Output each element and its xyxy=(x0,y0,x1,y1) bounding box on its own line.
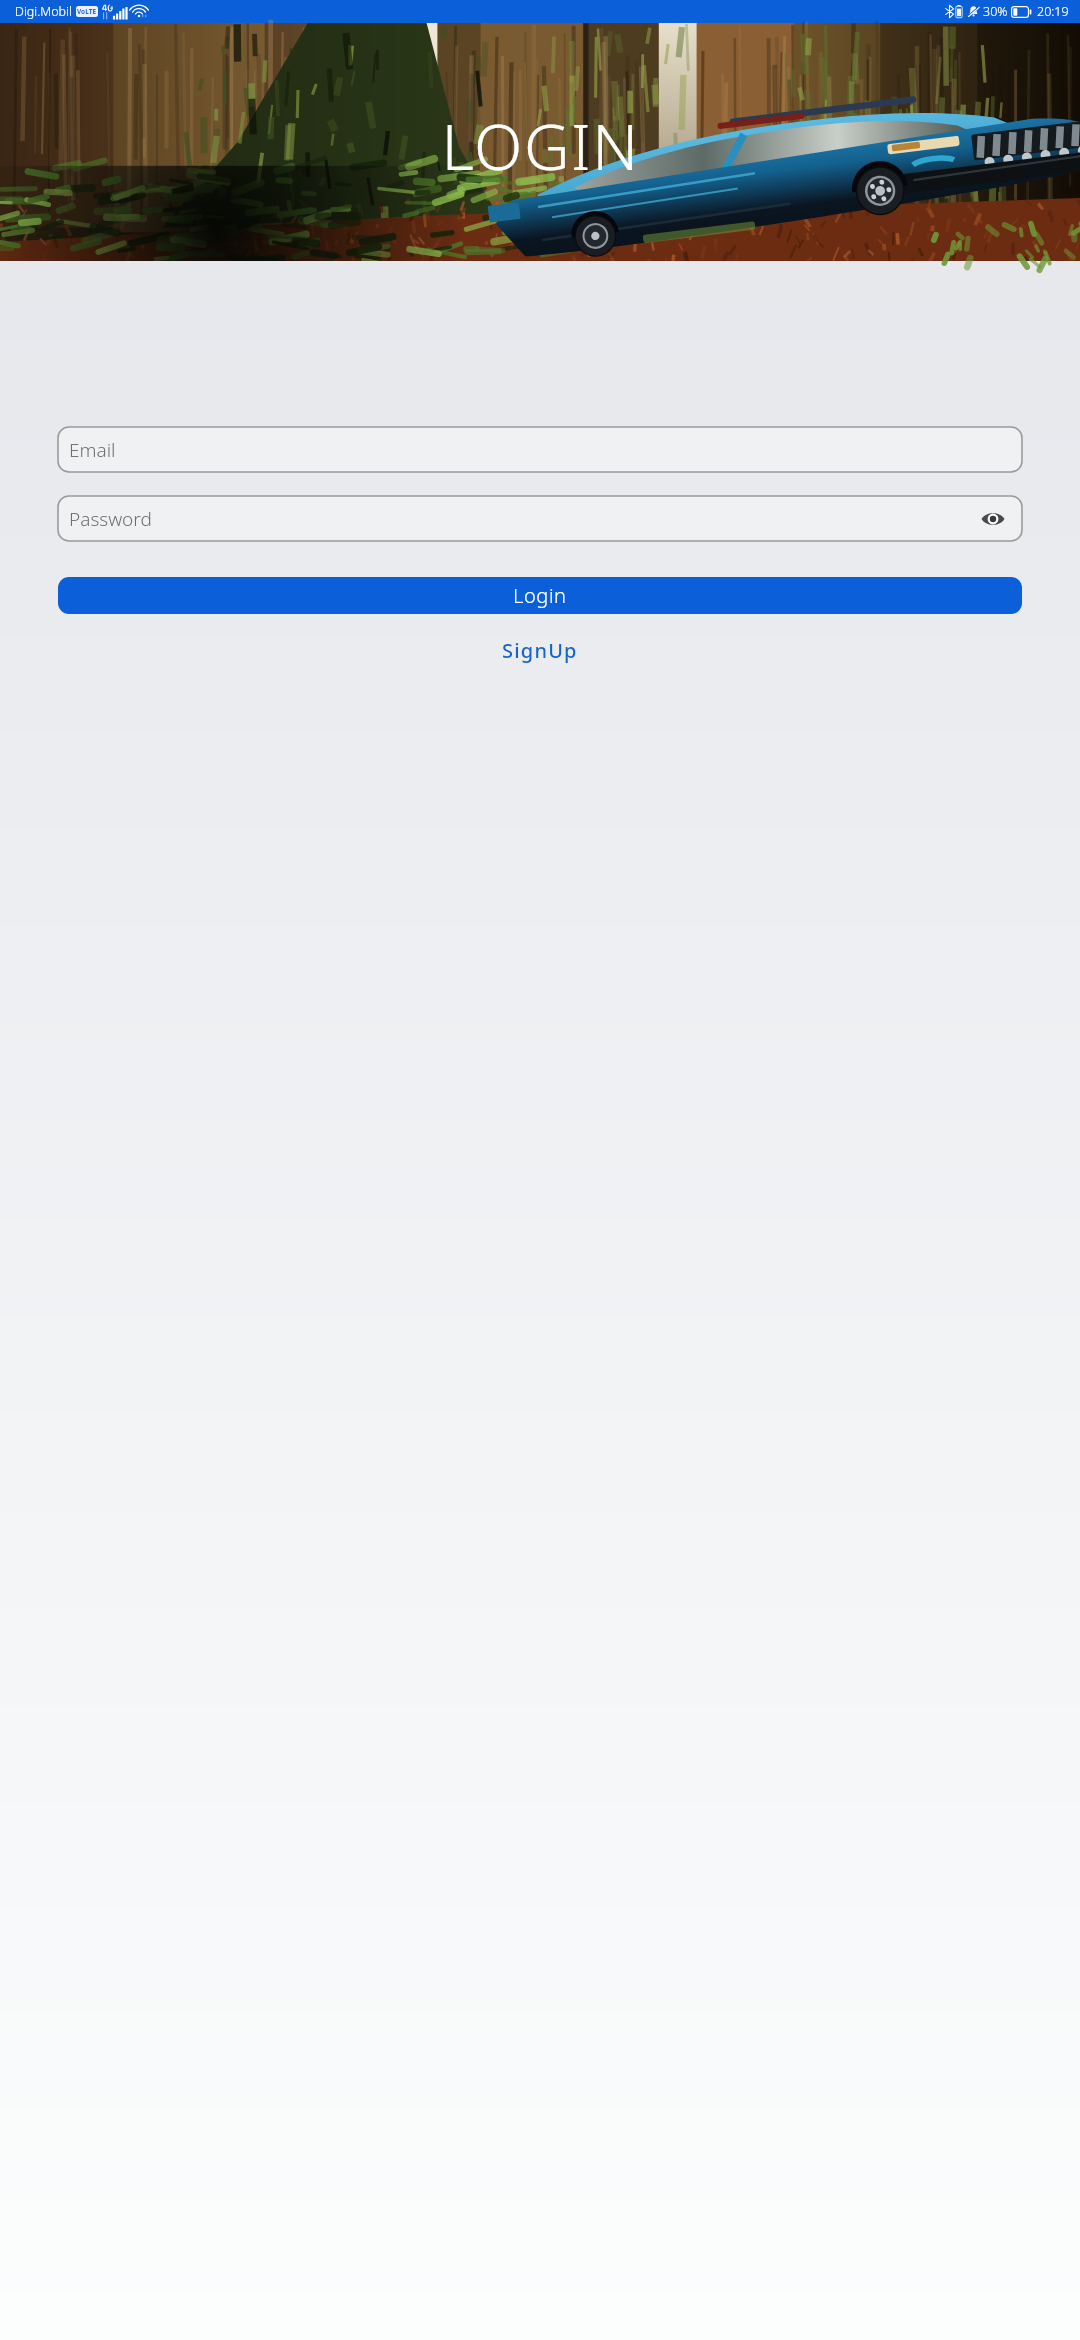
button[interactable]: Show password xyxy=(980,506,1006,532)
staticText: LOGIN xyxy=(441,103,640,189)
staticText: Email xyxy=(69,437,116,463)
button[interactable]: Email xyxy=(58,427,1022,472)
staticText: 20:19 xyxy=(1037,3,1069,20)
button[interactable]: SignUp xyxy=(484,631,596,670)
button[interactable]: Password xyxy=(58,496,1022,541)
button[interactable]: Login xyxy=(58,577,1022,614)
staticText: Password xyxy=(69,506,152,532)
staticText: VoLTE xyxy=(77,7,97,16)
staticText: 30% xyxy=(983,3,1008,20)
staticText: Digi.Mobil xyxy=(15,3,72,20)
staticText: Login xyxy=(513,582,567,609)
staticText: SignUp xyxy=(502,637,578,664)
